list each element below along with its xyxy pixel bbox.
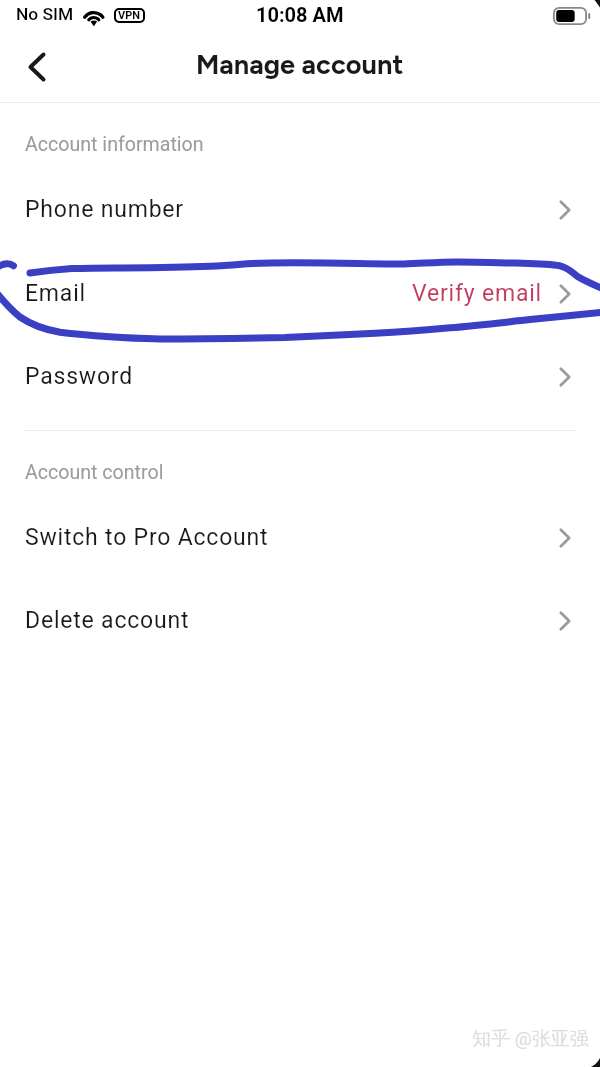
staticText: No SIM <box>16 4 74 24</box>
staticText: Manage account <box>196 48 404 81</box>
staticText: Phone number <box>25 196 184 223</box>
staticText: VPN <box>118 9 141 22</box>
button[interactable]: Switch to Pro Account <box>0 496 600 579</box>
button[interactable]: Password <box>0 335 600 418</box>
staticText: Password <box>25 363 133 390</box>
staticText: 10:08 AM <box>256 3 344 26</box>
staticText: 知乎 @张亚强 <box>472 1027 589 1051</box>
button[interactable]: Back <box>13 43 61 91</box>
staticText: Account information <box>25 133 204 156</box>
staticText: Verify email <box>412 280 542 307</box>
button[interactable]: Phone number <box>0 168 600 251</box>
staticText: Delete account <box>25 607 190 634</box>
staticText: Email <box>25 280 86 307</box>
staticText: Account control <box>25 461 164 484</box>
button[interactable]: Email <box>0 252 600 335</box>
button[interactable]: Delete account <box>0 579 600 662</box>
staticText: Switch to Pro Account <box>25 524 269 551</box>
